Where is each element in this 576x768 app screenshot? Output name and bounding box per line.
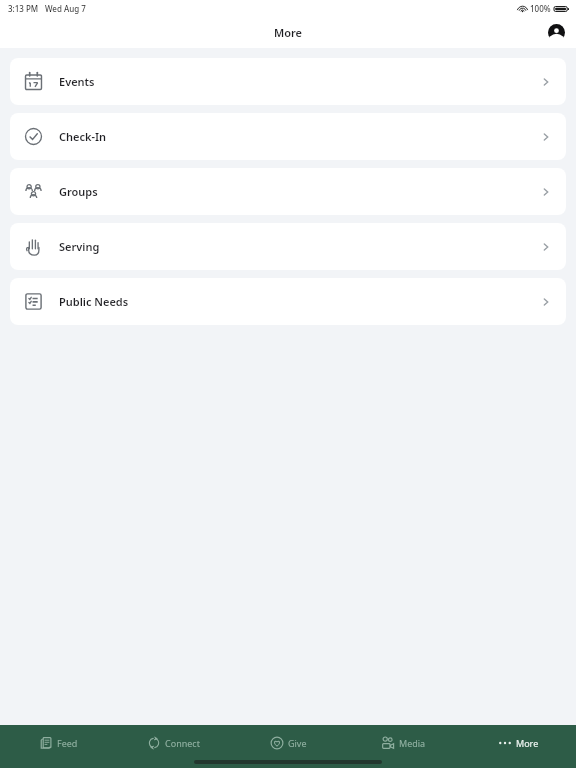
button[interactable]: Public Needs (10, 278, 566, 325)
staticText: Serving (59, 239, 100, 254)
button[interactable]: Events (10, 58, 566, 105)
staticText: Public Needs (59, 294, 129, 309)
staticText: Groups (59, 184, 98, 199)
button[interactable]: Groups (10, 168, 566, 215)
staticText: Give (288, 737, 307, 749)
button[interactable]: Check-In (10, 113, 566, 160)
staticText: 3:13 PM (8, 3, 39, 14)
button[interactable]: Media (346, 725, 461, 768)
staticText: More (516, 737, 539, 749)
staticText: Media (399, 737, 426, 749)
button[interactable]: Give (231, 725, 346, 768)
button[interactable]: Profile (544, 20, 568, 44)
staticText: Connect (165, 737, 200, 749)
button[interactable]: More (461, 725, 576, 768)
staticText: 100% (530, 3, 551, 14)
staticText: More (274, 25, 302, 40)
staticText: Wed Aug 7 (45, 3, 86, 14)
staticText: Events (59, 74, 95, 89)
staticText: Check-In (59, 129, 107, 144)
button[interactable]: Feed (0, 725, 116, 768)
button[interactable]: Connect (116, 725, 231, 768)
staticText: Feed (57, 737, 78, 749)
button[interactable]: Serving (10, 223, 566, 270)
